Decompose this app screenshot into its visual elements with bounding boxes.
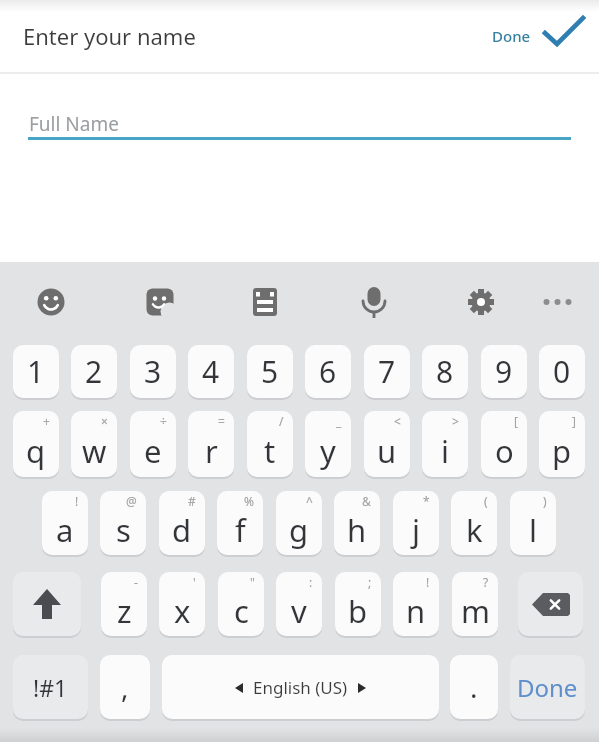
staticText: h <box>347 509 367 551</box>
staticText: ! <box>75 493 79 509</box>
staticText: b <box>348 590 368 632</box>
staticText: g <box>289 509 309 551</box>
staticText: Enter your name <box>23 21 196 51</box>
staticText: s <box>116 509 131 551</box>
staticText: % <box>244 493 254 509</box>
staticText: English (US) <box>253 676 348 699</box>
staticText: q <box>26 430 46 472</box>
staticText: p <box>552 430 572 472</box>
staticText: 4 <box>202 351 220 392</box>
staticText: ] <box>572 413 576 429</box>
staticText: [ <box>514 413 518 429</box>
staticText: m <box>461 590 490 632</box>
staticText: _ <box>336 413 342 429</box>
staticText: + <box>43 413 50 429</box>
staticText: d <box>172 509 192 551</box>
staticText: 2 <box>85 351 103 392</box>
staticText: j <box>412 509 420 551</box>
staticText: ; <box>368 574 372 590</box>
staticText: y <box>320 430 336 472</box>
staticText: r <box>205 430 218 472</box>
staticText: t <box>264 430 276 472</box>
staticText: × <box>101 413 108 429</box>
staticText: a <box>56 509 74 551</box>
staticText: !#1 <box>33 672 68 703</box>
staticText: 0 <box>553 351 571 392</box>
staticText: - <box>134 574 138 590</box>
staticText: f <box>235 509 246 551</box>
staticText: z <box>117 590 132 632</box>
staticText: 9 <box>495 351 513 392</box>
staticText: ( <box>484 493 488 509</box>
staticText: # <box>188 493 196 509</box>
staticText: & <box>362 493 371 509</box>
staticText: = <box>218 413 225 429</box>
staticText: e <box>144 430 162 472</box>
staticText: u <box>377 430 397 472</box>
staticText: : <box>309 574 313 590</box>
staticText: 8 <box>436 351 454 392</box>
staticText: l <box>529 509 537 551</box>
staticText: ' <box>193 574 196 590</box>
staticText: " <box>250 574 255 590</box>
staticText: @ <box>126 493 137 509</box>
staticText: c <box>234 590 249 632</box>
staticText: w <box>82 430 107 472</box>
staticText: * <box>423 493 430 509</box>
staticText: , <box>121 668 129 706</box>
staticText: ) <box>543 493 547 509</box>
staticText: Full Name <box>29 111 119 137</box>
staticText: > <box>452 413 459 429</box>
staticText: ? <box>483 574 489 590</box>
staticText: x <box>174 590 191 632</box>
staticText: n <box>406 590 426 632</box>
staticText: 6 <box>319 351 337 392</box>
staticText: ! <box>426 574 430 590</box>
staticText: / <box>279 413 284 429</box>
staticText: 1 <box>27 351 45 392</box>
staticText: v <box>291 590 307 632</box>
staticText: i <box>441 430 449 472</box>
staticText: 3 <box>144 351 162 392</box>
staticText: < <box>394 413 401 429</box>
staticText: Done <box>517 671 578 704</box>
staticText: ^ <box>306 493 313 509</box>
staticText: 5 <box>261 351 279 392</box>
staticText: o <box>495 430 514 472</box>
staticText: k <box>466 509 483 551</box>
staticText: ÷ <box>160 413 167 429</box>
staticText: . <box>470 668 478 706</box>
staticText: Done <box>492 26 531 46</box>
staticText: 7 <box>378 351 396 392</box>
